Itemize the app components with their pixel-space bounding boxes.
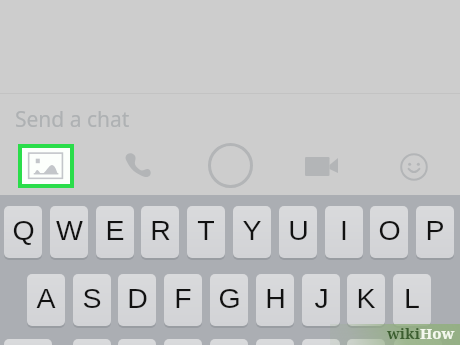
button[interactable]: F [164,274,202,326]
button[interactable]: Video call [305,157,338,176]
button[interactable] [164,339,202,345]
button[interactable]: W [50,206,88,258]
staticText: U [288,214,309,246]
button[interactable]: U [279,206,317,258]
button[interactable] [210,339,248,345]
button[interactable] [4,339,52,345]
button[interactable]: Stickers [397,150,430,183]
button[interactable]: O [370,206,408,258]
button[interactable]: G [210,274,248,326]
button[interactable]: H [256,274,294,326]
button[interactable] [73,339,111,345]
staticText: Q [12,214,35,246]
staticText: L [404,282,420,314]
staticText: R [150,214,171,246]
button[interactable]: Y [233,206,271,258]
button[interactable]: I [325,206,363,258]
staticText: O [378,214,401,246]
staticText: W [56,214,83,246]
button[interactable] [347,339,385,345]
button[interactable]: P [416,206,454,258]
button[interactable]: E [96,206,134,258]
button[interactable] [118,339,156,345]
button[interactable]: Call [124,152,152,178]
staticText: Send a chat [15,105,130,134]
staticText: T [197,214,215,246]
staticText: H [265,282,286,314]
button[interactable]: D [118,274,156,326]
staticText: S [82,282,102,314]
button[interactable] [302,339,340,345]
staticText: F [174,282,192,314]
staticText: E [105,214,125,246]
staticText: J [314,282,329,314]
button[interactable]: T [187,206,225,258]
staticText: D [127,282,148,314]
staticText: P [425,214,445,246]
button[interactable]: Take a snap [208,143,253,188]
button[interactable]: K [347,274,385,326]
button[interactable]: Q [4,206,42,258]
button[interactable]: A [27,274,65,326]
staticText: A [36,282,56,314]
staticText: K [356,282,376,314]
button[interactable]: S [73,274,111,326]
staticText: wiki [387,323,420,343]
button[interactable] [394,339,442,345]
staticText: How [420,323,455,343]
button[interactable]: J [302,274,340,326]
staticText: I [340,214,348,246]
button[interactable]: R [141,206,179,258]
button[interactable]: L [393,274,431,326]
button[interactable]: Open gallery [18,144,74,188]
staticText: Y [242,214,262,246]
staticText: G [218,282,241,314]
button[interactable] [256,339,294,345]
